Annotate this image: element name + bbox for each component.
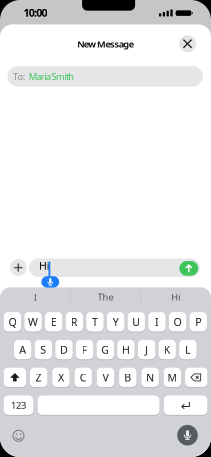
staticText: Maria Smith — [29, 70, 74, 83]
staticText: T — [92, 315, 98, 329]
button[interactable]: X — [52, 367, 70, 388]
button[interactable]: D — [55, 339, 73, 360]
button[interactable]: Emoji — [11, 429, 25, 443]
staticText: New Message — [77, 38, 134, 50]
button[interactable]: Send — [179, 261, 198, 276]
button[interactable]: O — [169, 312, 186, 332]
staticText: K — [164, 342, 171, 357]
button[interactable]: L — [179, 339, 197, 360]
button[interactable]: Y — [107, 312, 124, 332]
staticText: To: — [13, 70, 26, 83]
staticText: Q — [8, 315, 16, 329]
staticText: X — [58, 370, 64, 384]
button[interactable]: Dictation — [41, 276, 59, 288]
button[interactable]: W — [24, 312, 42, 332]
staticText: Z — [36, 370, 42, 384]
button[interactable]: H — [117, 339, 135, 360]
staticText: B — [124, 370, 131, 384]
button[interactable]: G — [97, 339, 114, 360]
button[interactable]: M — [164, 367, 181, 388]
button[interactable]: Hi — [143, 289, 209, 304]
staticText: A — [19, 342, 26, 357]
staticText: I — [34, 291, 37, 303]
staticText: S — [40, 342, 46, 357]
button[interactable]: B — [119, 367, 136, 388]
button[interactable]: R — [66, 312, 83, 332]
staticText: E — [51, 315, 57, 329]
button[interactable]: I — [2, 289, 68, 304]
button[interactable]: Message — [29, 258, 200, 277]
button[interactable]: P — [189, 312, 207, 332]
button[interactable]: C — [74, 367, 92, 388]
button[interactable]: 123 — [4, 395, 33, 415]
staticText: R — [71, 315, 78, 329]
button[interactable]: Space — [38, 395, 159, 415]
staticText: P — [195, 315, 201, 329]
button[interactable]: T — [86, 312, 104, 332]
button[interactable]: Dictation — [177, 425, 198, 445]
button[interactable]: E — [45, 312, 62, 332]
staticText: I — [155, 315, 159, 329]
button[interactable]: N — [141, 367, 159, 388]
button[interactable]: Add attachment — [10, 259, 27, 276]
staticText: G — [101, 342, 109, 357]
button[interactable]: U — [128, 312, 145, 332]
button[interactable]: To: — [7, 66, 203, 87]
button[interactable]: I — [148, 312, 166, 332]
staticText: L — [185, 342, 191, 357]
button[interactable]: Q — [4, 312, 21, 332]
staticText: Hi — [39, 259, 50, 273]
button[interactable]: F — [76, 339, 93, 360]
staticText: V — [102, 370, 108, 384]
staticText: U — [132, 315, 140, 329]
button[interactable]: J — [138, 339, 155, 360]
staticText: 123 — [11, 399, 26, 411]
staticText: H — [122, 342, 130, 357]
button[interactable]: Z — [30, 367, 47, 388]
staticText: C — [80, 370, 87, 384]
button[interactable]: Delete — [185, 367, 207, 388]
button[interactable]: The — [72, 289, 138, 304]
button[interactable]: Shift — [4, 367, 26, 388]
button[interactable]: V — [97, 367, 114, 388]
staticText: N — [146, 370, 154, 384]
staticText: D — [60, 342, 68, 357]
staticText: The — [97, 291, 113, 303]
staticText: O — [174, 315, 182, 329]
staticText: Hi — [171, 291, 180, 303]
staticText: F — [82, 342, 88, 357]
button[interactable]: Close — [179, 35, 196, 52]
staticText: 10:00 — [24, 5, 47, 20]
button[interactable]: A — [14, 339, 31, 360]
staticText: W — [28, 315, 38, 329]
button[interactable]: K — [158, 339, 176, 360]
button[interactable]: Return — [164, 395, 207, 415]
staticText: M — [167, 370, 177, 384]
staticText: Y — [113, 315, 119, 329]
staticText: J — [145, 342, 148, 357]
button[interactable]: S — [35, 339, 52, 360]
